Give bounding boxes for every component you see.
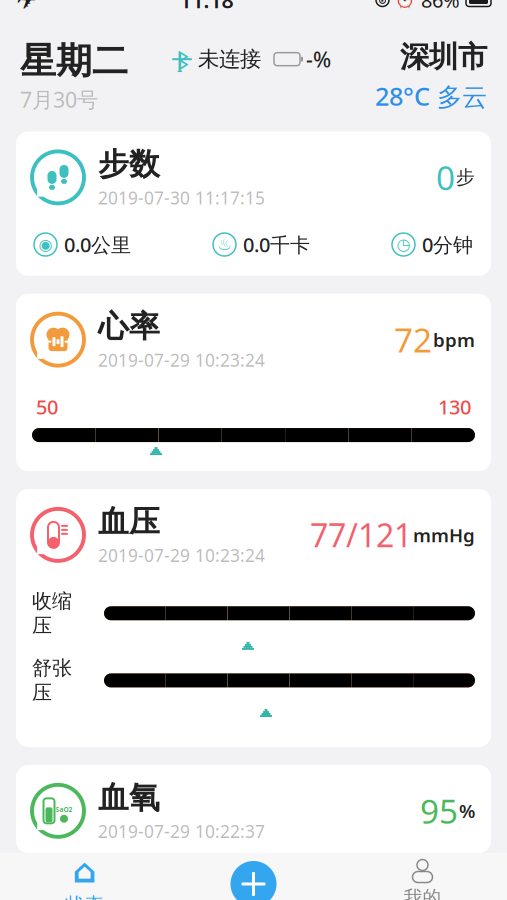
staticText: 血氧 — [98, 779, 160, 817]
staticText: 步 — [456, 166, 475, 189]
staticText: 星期二 — [20, 39, 128, 83]
staticText: bpm — [433, 327, 475, 352]
button[interactable]: ⌂ — [0, 853, 169, 900]
staticText: ♨ — [217, 235, 231, 254]
staticText: 血压 — [98, 503, 160, 541]
staticText: 0分钟 — [422, 231, 473, 258]
button[interactable]: SaO2 — [16, 765, 491, 853]
staticText: ᛒ — [176, 45, 187, 73]
staticText: 状态 — [65, 893, 103, 900]
staticText: 72 — [394, 317, 432, 362]
button[interactable]: 我的 — [338, 853, 507, 900]
staticText: -% — [306, 45, 331, 73]
staticText: mmHg — [413, 522, 475, 547]
staticText: ◉ — [38, 235, 52, 254]
staticText: 2019-07-29 10:22:37 — [98, 820, 265, 843]
staticText: 50 — [36, 393, 58, 420]
staticText: 28°C 多云 — [375, 79, 487, 113]
staticText: ✈ — [16, 0, 37, 14]
button[interactable]: Add — [169, 853, 338, 900]
staticText: ◷ — [396, 235, 410, 254]
staticText: 2019-07-29 10:23:24 — [98, 544, 265, 567]
staticText: SaO2 — [55, 805, 72, 814]
staticText: 0 — [436, 155, 455, 200]
staticText: 11:18 — [179, 0, 233, 14]
staticText: 深圳市 — [400, 39, 487, 75]
staticText: ⌂ — [72, 852, 96, 890]
staticText: 心率 — [98, 308, 160, 345]
button[interactable]: 血压 — [16, 489, 491, 747]
staticText: 0.0千卡 — [243, 231, 310, 258]
staticText: 2019-07-29 10:23:24 — [98, 348, 265, 371]
staticText: % — [459, 798, 475, 823]
staticText: 86% — [421, 0, 460, 13]
staticText: ⏰ — [395, 0, 415, 9]
staticText: 未连接 — [198, 46, 261, 72]
button[interactable]: 步数 — [16, 132, 491, 276]
staticText: 收缩压 — [32, 589, 72, 638]
button[interactable]: 心率 — [16, 294, 491, 471]
staticText: 95 — [420, 789, 458, 833]
staticText: 130 — [438, 393, 471, 420]
staticText: 舒张压 — [32, 656, 72, 705]
staticText: ⊙ — [378, 0, 387, 6]
staticText: 77/121 — [310, 514, 412, 556]
staticText: 0.0公里 — [64, 231, 131, 258]
staticText: 7月30号 — [20, 85, 98, 113]
staticText: 2019-07-30 11:17:15 — [98, 186, 265, 209]
staticText: 我的 — [403, 886, 441, 900]
staticText: 步数 — [98, 146, 160, 183]
